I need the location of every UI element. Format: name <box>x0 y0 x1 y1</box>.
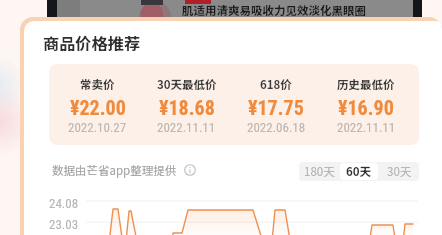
button[interactable]: 历史最低价 <box>321 64 411 145</box>
staticText: 180天 <box>304 163 335 180</box>
staticText: 2022.06.18 <box>247 120 306 135</box>
button[interactable]: 60天 <box>340 163 378 180</box>
staticText: 肌适用清爽易吸收力见效淡化黑眼圈 <box>182 2 366 19</box>
button[interactable]: 常卖价 <box>53 64 142 145</box>
button[interactable]: 180天 <box>300 163 338 180</box>
staticText: 60天 <box>346 163 372 180</box>
staticText: 历史最低价 <box>337 76 395 93</box>
button[interactable]: 618价 <box>231 64 321 145</box>
button[interactable]: 数据由芒省app整理提供 <box>52 161 196 179</box>
staticText: ¥16.90 <box>338 96 394 119</box>
staticText: 30天 <box>387 163 412 180</box>
staticText: 商品价格推荐 <box>43 31 141 54</box>
staticText: ¥22.00 <box>70 96 126 119</box>
staticText: 2022.11.11 <box>157 120 216 135</box>
staticText: 23.03 <box>49 217 79 232</box>
staticText: 常卖价 <box>80 76 115 93</box>
staticText: ¥17.75 <box>248 96 304 119</box>
staticText: 2022.11.11 <box>337 120 396 135</box>
staticText: 24.08 <box>49 196 79 211</box>
staticText: 数据由芒省app整理提供 <box>52 162 177 179</box>
staticText: ¥18.68 <box>159 96 215 119</box>
staticText: 2022.10.27 <box>68 120 127 135</box>
staticText: 618价 <box>260 76 292 93</box>
other: Info <box>184 164 196 176</box>
button[interactable]: 30天最低价 <box>142 64 231 145</box>
button[interactable]: 30天 <box>380 163 418 180</box>
staticText: 30天最低价 <box>157 76 217 93</box>
